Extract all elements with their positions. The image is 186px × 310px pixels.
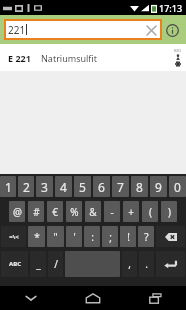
staticText: * <box>34 230 40 244</box>
staticText: & <box>89 205 97 219</box>
button[interactable]: ) <box>161 201 177 222</box>
button[interactable]: - <box>104 201 120 222</box>
button[interactable]: ABC <box>1 251 28 277</box>
button[interactable]: Hide keyboard <box>0 286 62 310</box>
staticText: @ <box>13 205 22 219</box>
button[interactable]: =\< <box>1 226 26 247</box>
staticText: - <box>110 205 114 219</box>
button[interactable]: ? <box>138 226 154 247</box>
button[interactable]: 6 <box>93 176 110 197</box>
staticText: / <box>54 257 58 271</box>
button[interactable]: Home <box>62 286 124 310</box>
staticText: : <box>91 230 94 244</box>
staticText: " <box>53 230 58 244</box>
staticText: ' <box>73 230 76 244</box>
button[interactable]: # <box>28 201 44 222</box>
staticText: 8 <box>136 179 143 195</box>
button[interactable]: 2 <box>18 176 34 197</box>
button[interactable]: 4 <box>55 176 72 197</box>
staticText: _ <box>36 257 41 271</box>
button[interactable]: " <box>47 226 64 247</box>
staticText: 3 <box>41 179 48 195</box>
button[interactable]: ( <box>142 201 158 222</box>
staticText: E 221 <box>8 52 31 64</box>
button[interactable]: 0 <box>169 176 186 197</box>
button[interactable]: 221 <box>4 19 162 40</box>
button[interactable]: Info <box>162 18 182 42</box>
staticText: + <box>128 205 134 219</box>
staticText: , <box>128 257 131 271</box>
button[interactable]: * <box>28 226 45 247</box>
button[interactable]: E 221 <box>0 44 186 71</box>
button[interactable]: Enter <box>156 251 185 277</box>
button[interactable]: 1 <box>0 176 16 197</box>
staticText: 6 <box>98 179 105 195</box>
staticText: % <box>70 205 79 219</box>
button[interactable]: _ <box>30 251 46 277</box>
staticText: 221 <box>8 23 26 37</box>
button[interactable]: @ <box>9 201 25 222</box>
button[interactable]: Backspace <box>156 226 185 247</box>
staticText: ? <box>144 230 149 244</box>
button[interactable]: . <box>139 251 154 277</box>
button[interactable]: ! <box>120 226 136 247</box>
staticText: 2 <box>23 179 30 195</box>
button[interactable]: + <box>123 201 139 222</box>
staticText: 1 <box>5 179 12 195</box>
button[interactable]: 8 <box>131 176 148 197</box>
staticText: ) <box>168 205 171 219</box>
staticText: 7 <box>117 179 124 195</box>
button[interactable]: % <box>66 201 82 222</box>
button[interactable]: : <box>84 226 100 247</box>
button[interactable]: Clear text <box>144 23 158 37</box>
staticText: 4 <box>60 179 67 195</box>
staticText: BIO <box>174 48 182 53</box>
button[interactable]: ; <box>102 226 118 247</box>
staticText: # <box>33 205 40 219</box>
button[interactable]: / <box>48 251 63 277</box>
staticText: =\< <box>9 233 19 241</box>
button[interactable]: & <box>85 201 101 222</box>
staticText: € <box>52 205 58 219</box>
button[interactable]: 3 <box>36 176 53 197</box>
staticText: ; <box>109 230 112 244</box>
staticText: . <box>145 257 148 271</box>
button[interactable]: € <box>47 201 63 222</box>
staticText: 0 <box>174 179 181 195</box>
staticText: ( <box>149 205 152 219</box>
staticText: Natriumsulfit <box>41 52 98 64</box>
staticText: 5 <box>79 179 86 195</box>
staticText: ABC <box>9 260 21 268</box>
button[interactable]: 5 <box>74 176 91 197</box>
staticText: 9 <box>155 179 162 195</box>
button[interactable]: 7 <box>112 176 129 197</box>
staticText: ! <box>127 230 130 244</box>
button[interactable]: 9 <box>150 176 167 197</box>
staticText: 17:13 <box>159 2 183 14</box>
button[interactable]: , <box>122 251 137 277</box>
button[interactable]: ' <box>66 226 82 247</box>
button[interactable]: Recents <box>124 286 186 310</box>
